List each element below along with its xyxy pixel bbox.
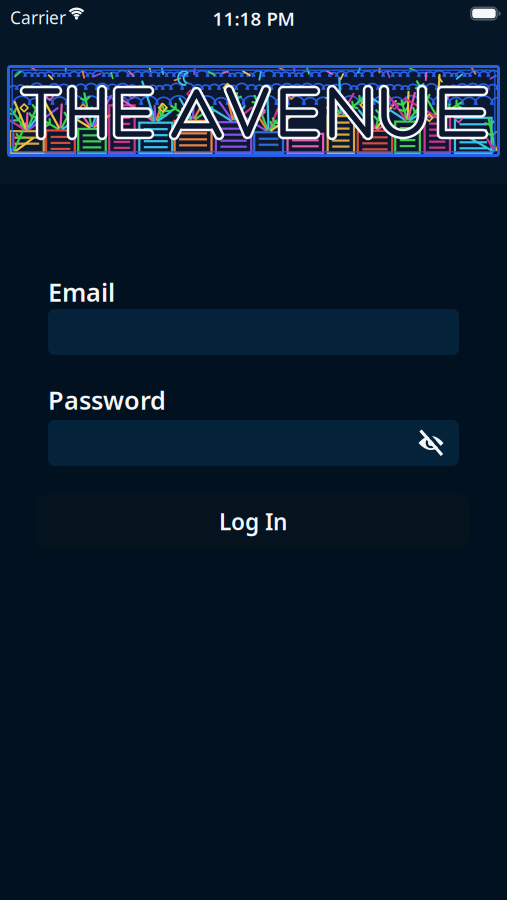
staticText: Email <box>48 275 115 309</box>
staticText: Password <box>48 383 166 417</box>
staticText: Log In <box>219 506 287 536</box>
staticText: 11:18 PM <box>212 6 294 31</box>
button[interactable]: Log In <box>36 494 470 549</box>
button[interactable] <box>409 423 453 463</box>
staticText: Carrier <box>10 6 66 29</box>
button[interactable] <box>48 420 459 466</box>
